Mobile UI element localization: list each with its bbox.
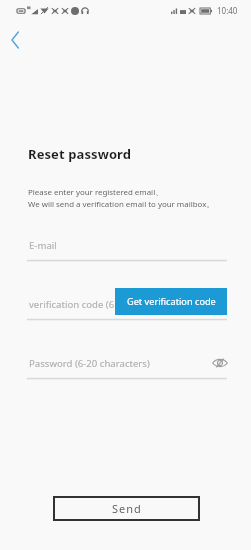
button[interactable]: Back xyxy=(2,27,28,53)
staticText: verification code (6 xyxy=(29,298,115,311)
staticText: Send xyxy=(112,501,142,516)
staticText: Reset password xyxy=(28,145,132,163)
staticText: Please enter your registered email、 We w… xyxy=(28,187,215,210)
staticText: Get verification code xyxy=(127,295,216,308)
button[interactable]: Toggle password visibility xyxy=(208,351,231,374)
staticText: E-mail xyxy=(29,239,57,252)
staticText: 10:40 xyxy=(217,5,238,16)
button[interactable]: Get verification code xyxy=(115,288,227,315)
staticText: Password (6-20 characters) xyxy=(29,357,150,370)
button[interactable]: Send xyxy=(53,496,200,521)
